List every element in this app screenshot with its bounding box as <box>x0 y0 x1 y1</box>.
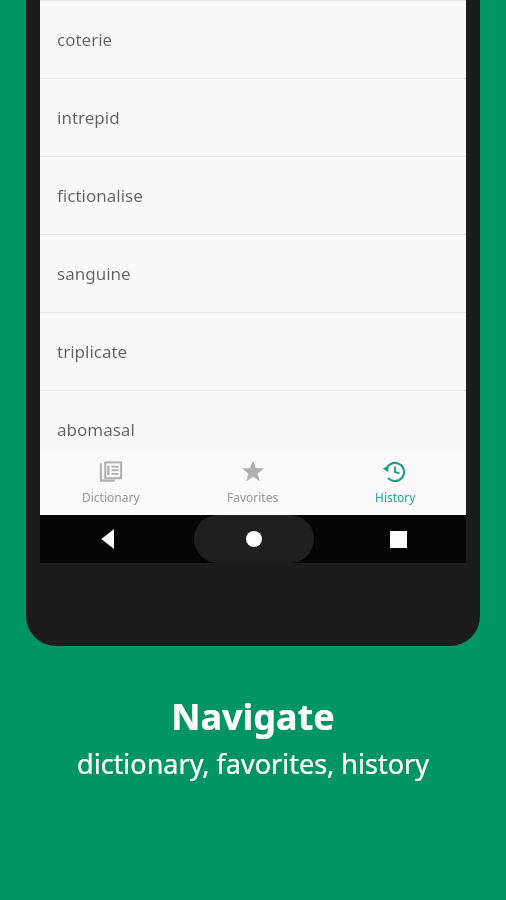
button[interactable]: fictionalise <box>40 157 466 234</box>
staticText: coterie <box>57 28 113 51</box>
button[interactable]: Recent apps <box>374 515 422 563</box>
button[interactable]: coterie <box>40 1 466 78</box>
staticText: abomasal <box>57 418 135 441</box>
staticText: Navigate <box>171 692 335 741</box>
button[interactable]: Back <box>85 515 133 563</box>
staticText: Favorites <box>227 489 279 505</box>
button[interactable]: intrepid <box>40 79 466 156</box>
staticText: dictionary, favorites, history <box>77 745 429 782</box>
button[interactable]: sanguine <box>40 235 466 312</box>
staticText: fictionalise <box>57 184 143 207</box>
staticText: intrepid <box>57 106 120 129</box>
button[interactable]: Favorites <box>182 450 324 515</box>
staticText: triplicate <box>57 340 128 363</box>
button[interactable]: Dictionary <box>40 450 182 515</box>
staticText: Dictionary <box>82 489 140 505</box>
button[interactable]: History <box>324 450 466 515</box>
staticText: History <box>375 489 416 505</box>
button[interactable]: Home <box>194 515 314 563</box>
staticText: sanguine <box>57 262 131 285</box>
button[interactable]: triplicate <box>40 313 466 390</box>
button[interactable]: abomasal <box>40 391 466 468</box>
